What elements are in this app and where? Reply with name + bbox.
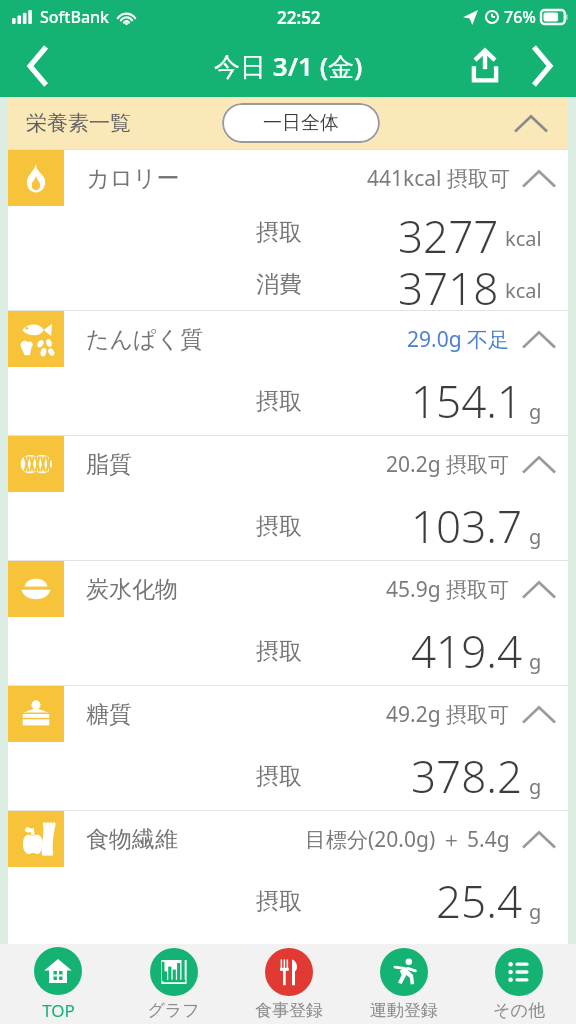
staticText: 419.4 bbox=[411, 621, 523, 681]
staticText: 摂取 bbox=[256, 762, 302, 791]
staticText: 摂取 bbox=[256, 512, 302, 541]
staticText: 103.7 bbox=[411, 496, 523, 556]
staticText: 一日全体 bbox=[263, 111, 339, 135]
staticText: 3277 bbox=[398, 206, 499, 258]
staticText: 運動登録 bbox=[370, 1000, 438, 1021]
staticText: 摂取 bbox=[256, 387, 302, 416]
staticText: g bbox=[529, 773, 542, 800]
staticText: g bbox=[529, 898, 542, 925]
button[interactable]: 次の日 bbox=[516, 34, 568, 97]
button[interactable]: たんぱく質 bbox=[8, 310, 568, 435]
button[interactable]: TOP bbox=[0, 944, 116, 1024]
button[interactable]: グラフ bbox=[116, 944, 231, 1024]
staticText: 食物繊維 bbox=[86, 825, 178, 854]
button[interactable]: 食物繊維 bbox=[8, 810, 568, 935]
staticText: g bbox=[529, 398, 542, 425]
staticText: 目標分(20.0g) ＋ 5.4g bbox=[305, 825, 510, 854]
staticText: 消費 bbox=[256, 270, 302, 299]
staticText: 49.2g 摂取可 bbox=[386, 700, 510, 729]
staticText: 食事登録 bbox=[255, 1000, 323, 1021]
button[interactable]: 炭水化物 bbox=[8, 560, 568, 685]
staticText: グラフ bbox=[147, 1000, 200, 1021]
staticText: 糖質 bbox=[86, 700, 132, 729]
staticText: g bbox=[529, 648, 542, 675]
staticText: 76% bbox=[504, 6, 536, 28]
staticText: 炭水化物 bbox=[86, 575, 178, 604]
button[interactable]: 栄養素一覧 bbox=[8, 97, 568, 149]
staticText: kcal bbox=[505, 277, 542, 304]
button[interactable]: 一日全体 bbox=[222, 103, 380, 143]
staticText: SoftBank bbox=[40, 6, 110, 28]
staticText: 栄養素一覧 bbox=[26, 110, 131, 136]
button[interactable]: 食事登録 bbox=[231, 944, 346, 1024]
button[interactable]: 糖質 bbox=[8, 685, 568, 810]
staticText: 脂質 bbox=[86, 450, 132, 479]
staticText: 22:52 bbox=[277, 6, 321, 29]
button[interactable]: その他 bbox=[461, 944, 576, 1024]
button[interactable]: 運動登録 bbox=[346, 944, 461, 1024]
button[interactable]: 共有 bbox=[454, 34, 516, 97]
button[interactable]: カロリー bbox=[8, 149, 568, 310]
staticText: 摂取 bbox=[256, 637, 302, 666]
staticText: 摂取 bbox=[256, 887, 302, 916]
staticText: 378.2 bbox=[411, 746, 523, 806]
staticText: その他 bbox=[493, 1000, 545, 1021]
staticText: TOP bbox=[42, 999, 75, 1022]
staticText: 154.1 bbox=[411, 371, 523, 431]
staticText: たんぱく質 bbox=[86, 325, 204, 354]
staticText: 今日 3/1 (金) bbox=[214, 48, 363, 84]
staticText: 441kcal 摂取可 bbox=[367, 164, 510, 193]
staticText: カロリー bbox=[86, 164, 180, 193]
staticText: 25.4 bbox=[436, 871, 523, 931]
staticText: 20.2g 摂取可 bbox=[386, 450, 510, 479]
staticText: g bbox=[529, 523, 542, 550]
staticText: 45.9g 摂取可 bbox=[386, 575, 510, 604]
staticText: 29.0g 不足 bbox=[407, 325, 510, 354]
button[interactable]: 脂質 bbox=[8, 435, 568, 560]
staticText: 摂取 bbox=[256, 218, 302, 247]
staticText: 3718 bbox=[398, 258, 499, 310]
button[interactable]: 前の日 bbox=[8, 34, 68, 97]
staticText: kcal bbox=[505, 225, 542, 252]
